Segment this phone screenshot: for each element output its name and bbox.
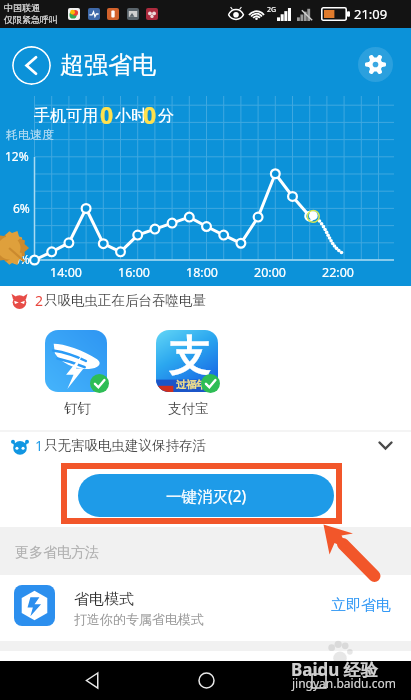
staticText: 16:00 — [118, 264, 150, 281]
button[interactable]: 最近任务 — [297, 661, 341, 700]
staticText: 钉钉 — [64, 400, 91, 417]
staticText: 手机可用 — [34, 106, 98, 126]
staticText: 支付宝 — [168, 400, 209, 417]
staticText: 分 — [158, 106, 174, 126]
staticText: 12% — [5, 148, 29, 164]
staticText: 只无害吸电虫建议保持存活 — [44, 437, 206, 454]
staticText: 中国联通 — [4, 2, 40, 13]
staticText: 0 — [100, 99, 114, 130]
button[interactable]: 返回 — [70, 661, 114, 700]
staticText: 立即省电 — [331, 596, 391, 615]
staticText: 14:00 — [50, 264, 82, 281]
staticText: 0 — [143, 99, 157, 130]
button[interactable]: 省电模式 — [0, 575, 411, 641]
staticText: 耗电速度 — [6, 127, 54, 142]
staticText: 只吸电虫正在后台吞噬电量 — [44, 292, 206, 309]
staticText: 过福年 — [176, 378, 206, 391]
staticText: Baidu 经验 — [291, 658, 378, 681]
staticText: jingyan.baidu.com — [292, 675, 396, 691]
staticText: 21:09 — [354, 5, 388, 23]
staticText: 一键消灭(2) — [166, 485, 247, 506]
staticText: 支 — [169, 331, 210, 383]
staticText: 超强省电 — [60, 50, 156, 80]
staticText: 18:00 — [186, 264, 218, 281]
staticText: 省电模式 — [74, 590, 134, 609]
button[interactable]: 一键消灭(2) — [78, 474, 334, 517]
staticText: 仅限紧急呼叫 — [4, 14, 58, 25]
button[interactable]: 支 — [156, 330, 218, 392]
button[interactable]: 立即省电 — [321, 590, 401, 621]
button[interactable]: 主页 — [184, 661, 228, 700]
button[interactable]: 设置 — [358, 47, 393, 82]
staticText: 更多省电方法 — [15, 544, 99, 562]
staticText: 6% — [13, 200, 30, 216]
staticText: 1 — [35, 436, 44, 455]
staticText: 20:00 — [254, 264, 286, 281]
staticText: 小时 — [115, 106, 147, 126]
button[interactable]: 返回 — [12, 46, 51, 85]
staticText: 打造你的专属省电模式 — [74, 611, 204, 627]
button[interactable] — [45, 330, 107, 392]
staticText: 22:00 — [322, 264, 354, 281]
staticText: 2G — [267, 5, 277, 15]
button[interactable]: 1 — [0, 432, 411, 459]
staticText: 2 — [35, 291, 44, 310]
button[interactable]: 展开 — [369, 432, 401, 459]
staticText: 0% — [13, 251, 30, 267]
